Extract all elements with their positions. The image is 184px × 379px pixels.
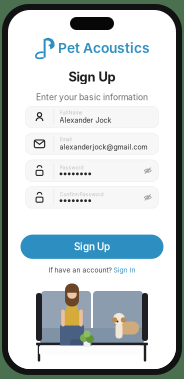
staticText: Sign Up [74, 241, 110, 253]
staticText: Sign Up [68, 69, 115, 84]
button[interactable]: Full Name [25, 106, 158, 128]
staticText: alexanderjock@gmail.com [60, 143, 148, 151]
button[interactable]: Confirm Password [25, 187, 158, 208]
staticText: Pet Acoustics [58, 40, 150, 56]
staticText: Email [60, 136, 72, 142]
staticText: Sign In [113, 266, 135, 274]
staticText: Alexander Jock [60, 116, 112, 124]
button[interactable]: Sign In [113, 266, 135, 274]
staticText: Full Name [60, 110, 83, 116]
button[interactable]: Sign Up [20, 235, 163, 259]
staticText: Password [60, 165, 84, 171]
staticText: Confirm Password [60, 191, 104, 197]
staticText: If have an account? [48, 266, 111, 274]
button[interactable]: Password [25, 160, 158, 181]
button[interactable]: Email [25, 133, 158, 155]
staticText: Enter your basic information [36, 92, 148, 102]
